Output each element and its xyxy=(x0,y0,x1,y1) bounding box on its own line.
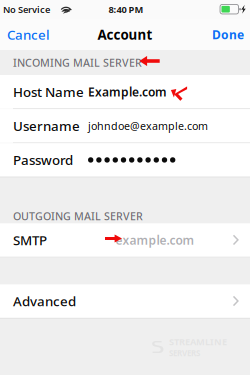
staticText: Password xyxy=(13,151,73,169)
staticText: No Service xyxy=(3,3,50,16)
staticText: Advanced xyxy=(13,292,76,310)
button[interactable]: Username xyxy=(0,109,250,143)
staticText: Cancel xyxy=(7,26,50,43)
button[interactable]: SMTP xyxy=(0,223,250,257)
staticText: SMTP xyxy=(13,231,47,249)
staticText: Account xyxy=(97,26,152,43)
staticText: Example.com xyxy=(88,84,167,100)
staticText: Username xyxy=(13,117,80,135)
staticText: SERVERS xyxy=(169,348,200,358)
staticText: johndoe@example.com xyxy=(88,119,208,133)
staticText: 8:40 PM xyxy=(108,3,143,16)
button[interactable]: Host Name xyxy=(0,75,250,108)
staticText: OUTGOING MAIL SERVER xyxy=(13,209,143,223)
staticText: example.com xyxy=(115,232,194,248)
button[interactable]: Done xyxy=(206,19,250,50)
staticText: INCOMING MAIL SERVER xyxy=(13,55,142,70)
button[interactable]: Password xyxy=(0,143,250,177)
staticText: Host Name xyxy=(13,83,84,101)
staticText: STREAMLINE xyxy=(169,335,227,348)
button[interactable]: Cancel xyxy=(0,19,57,50)
staticText: Done xyxy=(212,26,244,42)
button[interactable]: Advanced xyxy=(0,284,250,318)
